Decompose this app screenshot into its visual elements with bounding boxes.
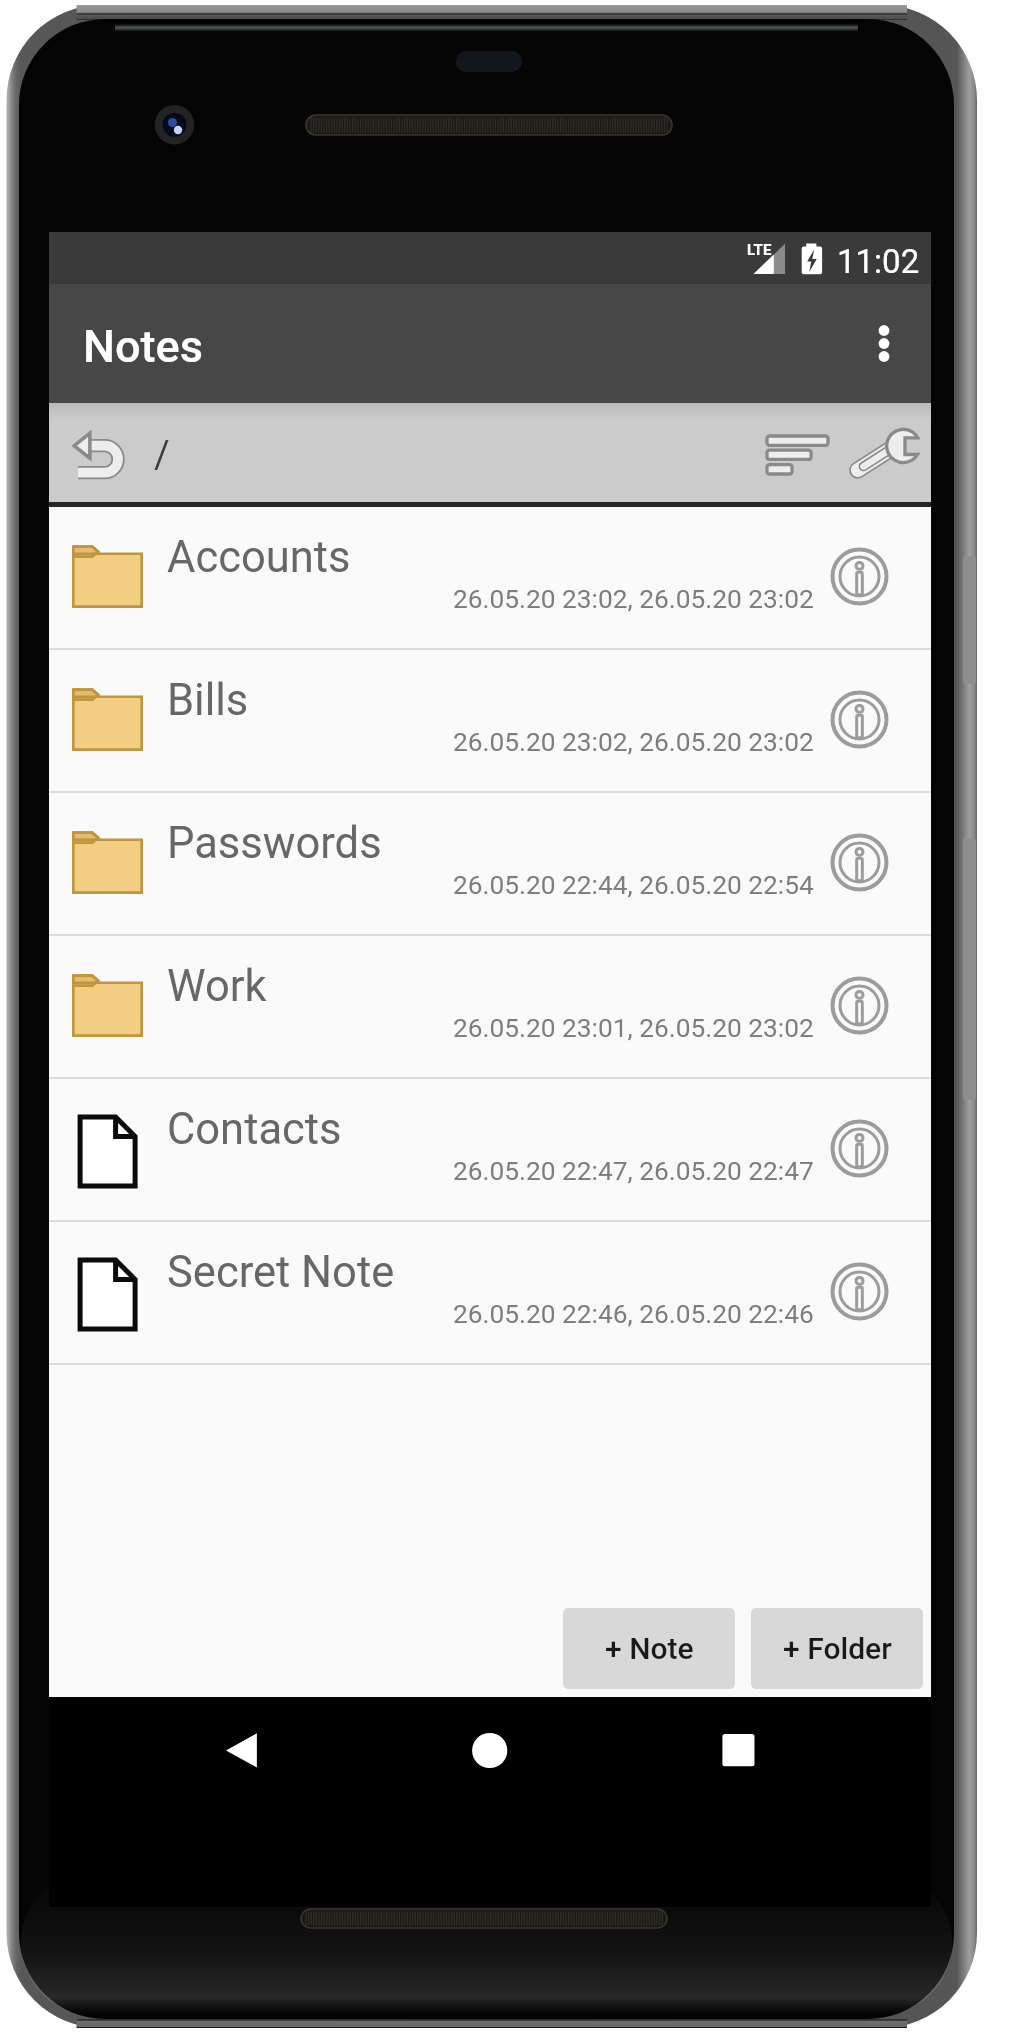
staticText: 26.05.20 22:46, 26.05.20 22:46 xyxy=(453,1299,814,1330)
staticText: / xyxy=(154,433,170,478)
staticText: Accounts xyxy=(167,532,351,583)
button[interactable]: Info xyxy=(820,1252,898,1330)
button[interactable]: Sort xyxy=(755,403,839,502)
staticText: 26.05.20 22:44, 26.05.20 22:54 xyxy=(453,870,814,901)
staticText: + Folder xyxy=(783,1631,892,1666)
button[interactable]: Info xyxy=(820,680,898,758)
button[interactable]: Secret Note xyxy=(49,1222,931,1363)
staticText: Work xyxy=(167,961,267,1012)
staticText: 26.05.20 23:02, 26.05.20 23:02 xyxy=(453,727,814,758)
button[interactable]: More options xyxy=(836,284,932,403)
staticText: Secret Note xyxy=(167,1247,395,1298)
button[interactable]: Settings xyxy=(842,403,926,502)
button[interactable]: Info xyxy=(820,1109,898,1187)
staticText: 26.05.20 23:02, 26.05.20 23:02 xyxy=(453,584,814,615)
staticText: 26.05.20 23:01, 26.05.20 23:02 xyxy=(453,1013,814,1044)
staticText: + Note xyxy=(605,1631,694,1666)
button[interactable]: Bills xyxy=(49,650,931,791)
button[interactable]: Contacts xyxy=(49,1079,931,1220)
staticText: Notes xyxy=(83,320,203,373)
staticText: LTE xyxy=(747,241,772,259)
button[interactable]: Info xyxy=(820,823,898,901)
staticText: Passwords xyxy=(167,818,382,869)
staticText: Contacts xyxy=(167,1104,342,1155)
button[interactable]: Up xyxy=(51,403,139,502)
button[interactable]: + Folder xyxy=(751,1608,923,1689)
staticText: 26.05.20 22:47, 26.05.20 22:47 xyxy=(453,1156,814,1187)
button[interactable]: Info xyxy=(820,537,898,615)
button[interactable]: Info xyxy=(820,966,898,1044)
button[interactable]: / xyxy=(139,403,183,502)
button[interactable]: Accounts xyxy=(49,507,931,648)
staticText: 11:02 xyxy=(837,242,920,281)
staticText: Bills xyxy=(167,675,249,726)
button[interactable]: Passwords xyxy=(49,793,931,934)
button[interactable]: Work xyxy=(49,936,931,1077)
button[interactable]: + Note xyxy=(563,1608,735,1689)
